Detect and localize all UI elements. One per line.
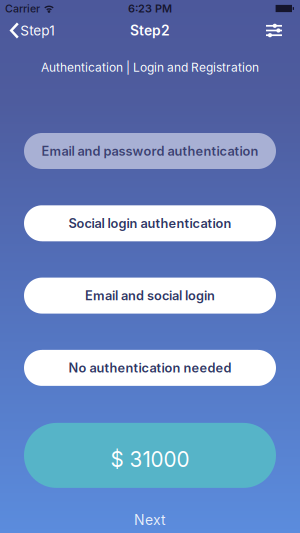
button[interactable]: Email and password authentication xyxy=(24,133,276,169)
staticText: Step2 xyxy=(130,22,170,39)
staticText: No authentication needed xyxy=(68,360,231,376)
button[interactable]: No authentication needed xyxy=(24,350,276,386)
button[interactable]: Social login authentication xyxy=(24,205,276,241)
button[interactable]: $ 31000 xyxy=(24,423,276,488)
button[interactable]: Filters xyxy=(256,17,300,44)
staticText: Carrier xyxy=(5,2,40,15)
staticText: Email and password authentication xyxy=(41,143,258,159)
button[interactable]: Step1 xyxy=(0,17,61,44)
staticText: Email and social login xyxy=(85,288,215,303)
staticText: 6:23 PM xyxy=(128,2,172,15)
staticText: Step1 xyxy=(20,22,55,39)
staticText: Social login authentication xyxy=(68,216,231,231)
staticText: Next xyxy=(134,511,166,528)
button[interactable]: Email and social login xyxy=(24,278,276,314)
staticText: Authentication | Login and Registration xyxy=(41,60,259,75)
button[interactable]: Next xyxy=(134,512,166,528)
staticText: $ 31000 xyxy=(110,447,189,472)
